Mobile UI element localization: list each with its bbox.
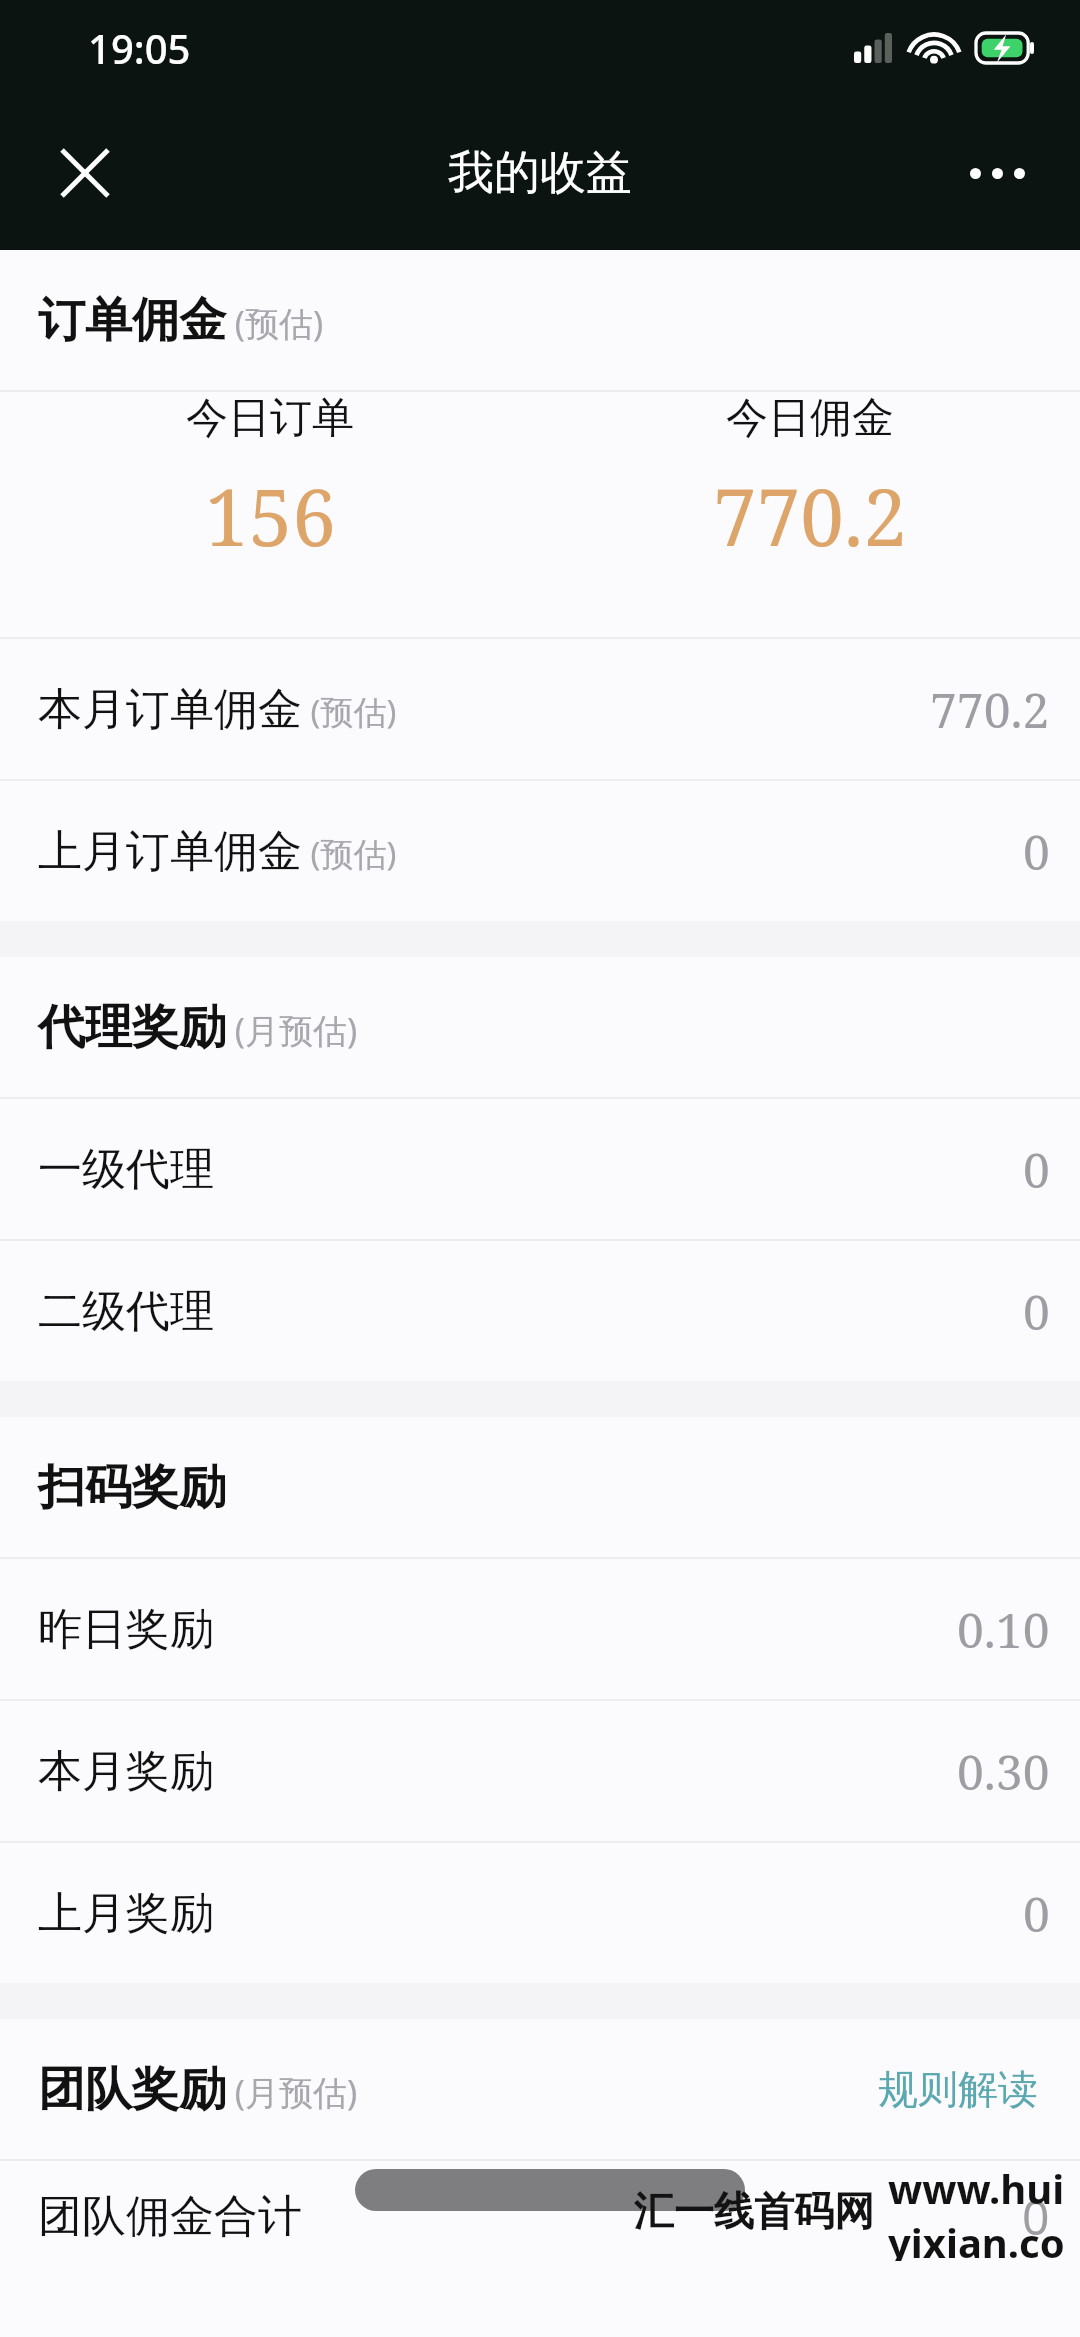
staticText: 汇一线首码网 [634, 2186, 874, 2236]
staticText: www.huiyixian.com [888, 2161, 1080, 2261]
staticText: 订单佣金 (预估) [38, 291, 324, 350]
button[interactable]: 规则解读 [872, 2054, 1044, 2124]
staticText: 扫码奖励 [38, 1458, 226, 1517]
button[interactable]: 团队佣金合计 [0, 2161, 1080, 2271]
staticText: 代理奖励 (月预估) [38, 998, 358, 1057]
button[interactable]: 一级代理 [0, 1099, 1080, 1239]
button[interactable]: 今日订单 [0, 392, 540, 569]
staticText: 一级代理 [38, 1142, 214, 1197]
staticText: 本月奖励 [38, 1744, 214, 1799]
staticText: 770.2 [930, 677, 1050, 742]
staticText: 昨日奖励 [38, 1602, 214, 1657]
staticText: 我的收益 [448, 144, 632, 202]
button[interactable]: 昨日奖励 [0, 1559, 1080, 1699]
button[interactable]: 二级代理 [0, 1241, 1080, 1381]
staticText: 770.2 [713, 463, 907, 569]
button[interactable]: More options [952, 128, 1042, 218]
button[interactable]: 今日佣金 [540, 392, 1080, 569]
button[interactable]: 上月奖励 [0, 1843, 1080, 1983]
staticText: 本月订单佣金 (预估) [38, 682, 397, 737]
button[interactable]: 本月订单佣金 (预估) [0, 639, 1080, 779]
staticText: 0.10 [957, 1597, 1050, 1662]
staticText: 156 [205, 463, 336, 569]
staticText: 0 [1023, 819, 1050, 884]
staticText: 今日订单 [186, 392, 354, 445]
staticText: 规则解读 [878, 2064, 1038, 2114]
staticText: 19:05 [88, 21, 191, 75]
staticText: 0 [1023, 1137, 1050, 1202]
staticText: 上月订单佣金 (预估) [38, 824, 397, 879]
staticText: 二级代理 [38, 1284, 214, 1339]
button[interactable]: Close [40, 128, 130, 218]
staticText: 上月奖励 [38, 1886, 214, 1941]
staticText: 0 [1023, 1881, 1050, 1946]
button[interactable]: 本月奖励 [0, 1701, 1080, 1841]
staticText: 团队奖励 (月预估) [38, 2060, 358, 2119]
button[interactable]: 上月订单佣金 (预估) [0, 781, 1080, 921]
staticText: 团队佣金合计 [38, 2189, 302, 2244]
staticText: 0 [1022, 2184, 1050, 2249]
staticText: 今日佣金 [726, 392, 894, 445]
staticText: 0 [1023, 1279, 1050, 1344]
staticText: 0.30 [957, 1739, 1050, 1804]
